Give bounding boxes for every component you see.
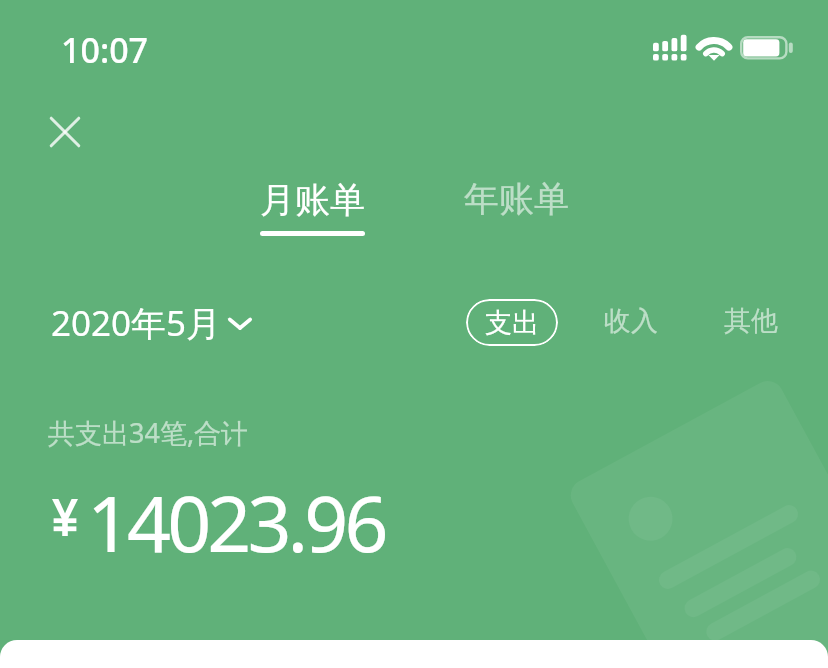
button[interactable]: 月账单 [248,178,377,236]
button[interactable]: 其他 [711,297,791,344]
staticText: 年账单 [464,177,569,221]
staticText: 2020年5月 [51,299,222,347]
staticText: 支出 [485,306,539,340]
staticText: 其他 [724,304,778,338]
button[interactable]: 支出 [466,299,558,346]
staticText: 14023.96 [87,470,385,575]
staticText: 10:07 [61,27,149,73]
button[interactable]: 2020年5月 [39,295,264,351]
button[interactable]: 收入 [591,297,671,344]
button[interactable]: Close [34,101,96,163]
staticText: 收入 [604,304,658,338]
button[interactable]: 年账单 [452,177,581,221]
staticText: 月账单 [260,178,365,222]
staticText: 共支出34笔,合计 [48,414,249,451]
